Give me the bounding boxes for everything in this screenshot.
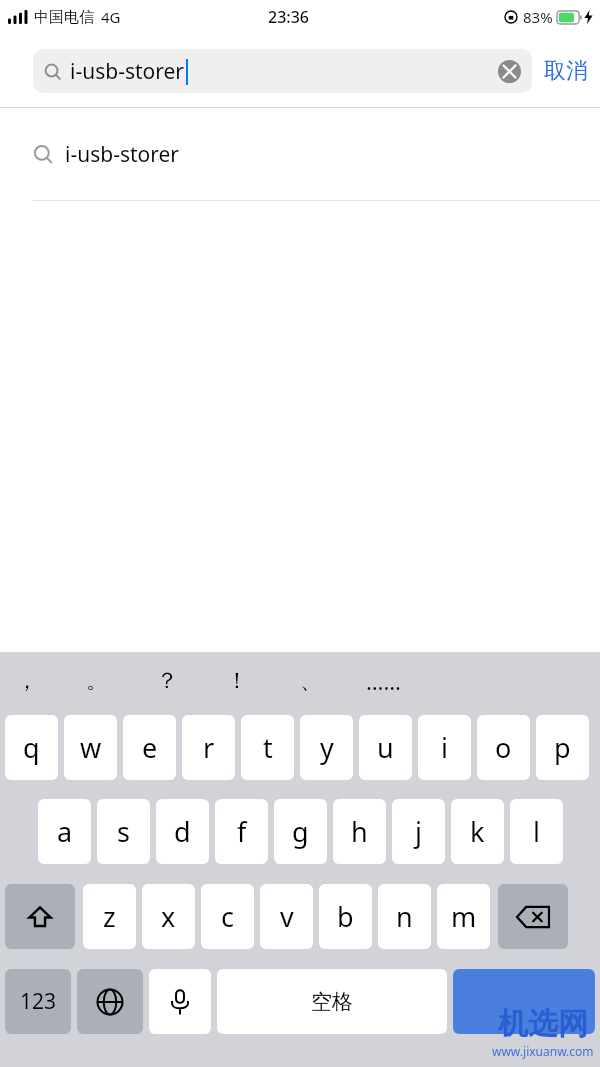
- staticText: 取消: [544, 57, 588, 85]
- button[interactable]: q: [5, 715, 58, 780]
- staticText: g: [292, 813, 309, 850]
- staticText: 中国电信: [34, 8, 94, 27]
- staticText: b: [337, 898, 354, 935]
- staticText: h: [351, 813, 368, 850]
- button[interactable]: Clear text: [496, 58, 522, 84]
- button[interactable]: n: [378, 884, 431, 949]
- staticText: t: [263, 729, 273, 766]
- staticText: www.jixuanw.com: [492, 1043, 594, 1059]
- staticText: ！: [226, 667, 248, 695]
- staticText: l: [533, 813, 540, 850]
- button[interactable]: ？: [144, 662, 190, 700]
- staticText: i-usb-storer: [70, 57, 185, 86]
- staticText: q: [23, 729, 40, 766]
- button[interactable]: k: [451, 799, 504, 864]
- button[interactable]: 取消: [544, 57, 588, 85]
- staticText: 123: [20, 987, 57, 1016]
- staticText: m: [451, 898, 477, 935]
- staticText: x: [161, 898, 176, 935]
- button[interactable]: Voice input: [149, 969, 211, 1034]
- button[interactable]: m: [437, 884, 490, 949]
- staticText: 83%: [523, 7, 553, 27]
- button[interactable]: Change keyboard: [77, 969, 143, 1034]
- staticText: d: [174, 813, 191, 850]
- staticText: p: [554, 729, 571, 766]
- button[interactable]: w: [64, 715, 117, 780]
- staticText: u: [377, 729, 394, 766]
- staticText: j: [415, 813, 422, 850]
- button[interactable]: b: [319, 884, 372, 949]
- button[interactable]: s: [97, 799, 150, 864]
- button[interactable]: 123: [5, 969, 71, 1034]
- button[interactable]: 、: [288, 662, 334, 700]
- staticText: v: [280, 898, 294, 935]
- button[interactable]: Shift: [5, 884, 75, 949]
- button[interactable]: ……: [360, 662, 406, 700]
- button[interactable]: ，: [4, 662, 50, 700]
- staticText: 。: [86, 667, 108, 695]
- button[interactable]: j: [392, 799, 445, 864]
- button[interactable]: o: [477, 715, 530, 780]
- button[interactable]: x: [142, 884, 195, 949]
- button[interactable]: g: [274, 799, 327, 864]
- staticText: f: [237, 813, 247, 850]
- staticText: z: [103, 898, 116, 935]
- staticText: 23:36: [268, 6, 309, 28]
- staticText: ……: [366, 666, 401, 696]
- button[interactable]: y: [300, 715, 353, 780]
- button[interactable]: v: [260, 884, 313, 949]
- button[interactable]: 。: [74, 662, 120, 700]
- staticText: n: [396, 898, 413, 935]
- button[interactable]: e: [123, 715, 176, 780]
- staticText: s: [117, 813, 130, 850]
- button[interactable]: z: [83, 884, 136, 949]
- staticText: 4G: [101, 7, 121, 27]
- staticText: 机选网: [498, 1005, 588, 1043]
- button[interactable]: h: [333, 799, 386, 864]
- staticText: i: [441, 729, 448, 766]
- button[interactable]: 空格: [217, 969, 447, 1034]
- staticText: o: [495, 729, 512, 766]
- button[interactable]: i-usb-storer: [33, 49, 532, 93]
- button[interactable]: f: [215, 799, 268, 864]
- staticText: c: [221, 898, 234, 935]
- staticText: w: [80, 729, 102, 766]
- staticText: k: [470, 813, 485, 850]
- staticText: a: [57, 813, 73, 850]
- staticText: ？: [156, 667, 178, 695]
- staticText: y: [320, 729, 334, 766]
- staticText: 、: [300, 667, 322, 695]
- button[interactable]: r: [182, 715, 235, 780]
- button[interactable]: p: [536, 715, 589, 780]
- staticText: r: [203, 729, 215, 766]
- staticText: 空格: [311, 989, 353, 1015]
- staticText: ，: [16, 667, 38, 695]
- staticText: i-usb-storer: [65, 140, 180, 169]
- button[interactable]: u: [359, 715, 412, 780]
- button[interactable]: l: [510, 799, 563, 864]
- button[interactable]: ！: [214, 662, 260, 700]
- button[interactable]: i: [418, 715, 471, 780]
- staticText: e: [142, 729, 158, 766]
- button[interactable]: a: [38, 799, 91, 864]
- button[interactable]: c: [201, 884, 254, 949]
- button[interactable]: i-usb-storer: [0, 108, 600, 201]
- button[interactable]: Search: [453, 969, 595, 1034]
- button[interactable]: Delete: [498, 884, 568, 949]
- button[interactable]: t: [241, 715, 294, 780]
- button[interactable]: d: [156, 799, 209, 864]
